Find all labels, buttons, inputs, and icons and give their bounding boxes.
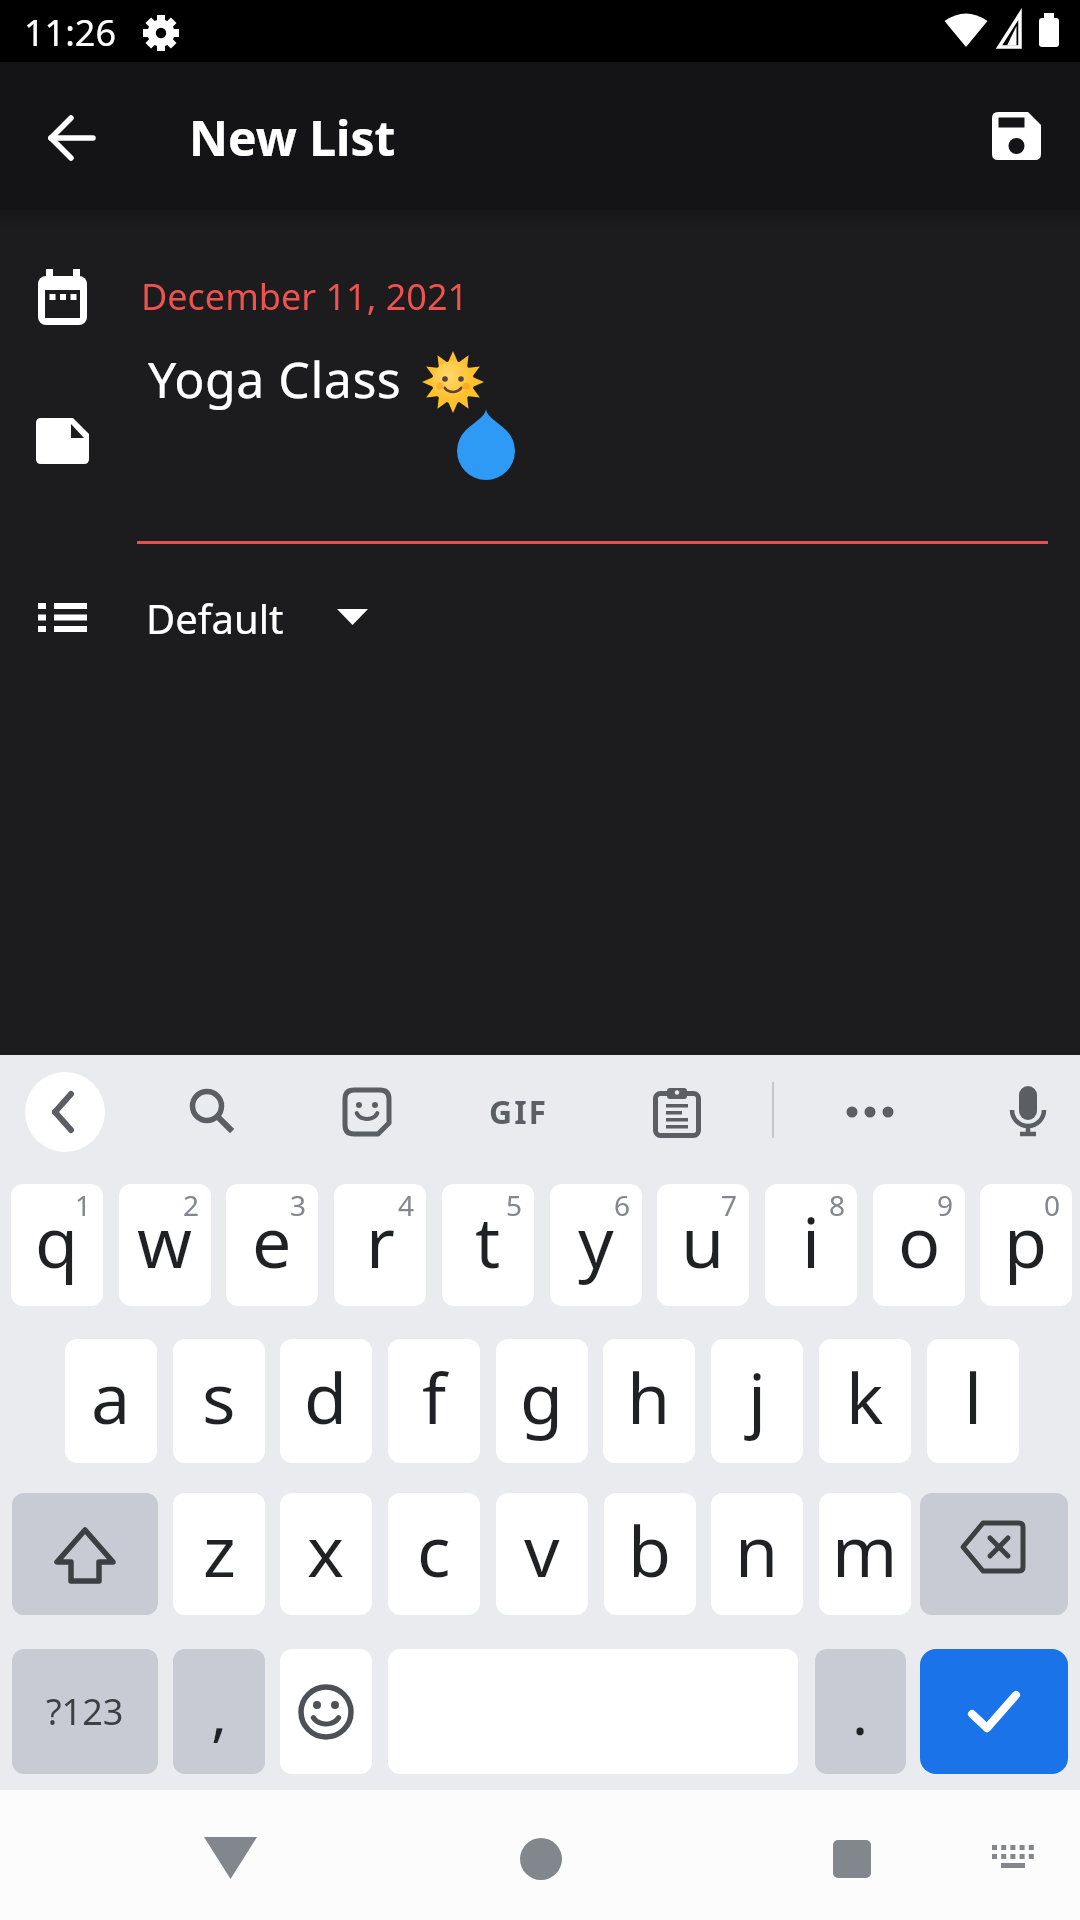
button[interactable]: r xyxy=(334,1184,426,1306)
staticText: n xyxy=(735,1502,779,1597)
button[interactable]: y xyxy=(550,1184,642,1306)
staticText: y xyxy=(578,1193,614,1288)
button[interactable]: k xyxy=(819,1339,911,1463)
button[interactable]: z xyxy=(173,1493,265,1615)
button[interactable]: u xyxy=(657,1184,749,1306)
button[interactable]: n xyxy=(711,1493,803,1615)
button[interactable]: s xyxy=(173,1339,265,1463)
button[interactable]: o xyxy=(873,1184,965,1306)
button[interactable]: Default xyxy=(20,580,420,652)
button[interactable] xyxy=(280,1649,372,1774)
button[interactable] xyxy=(981,100,1053,172)
button[interactable]: b xyxy=(604,1493,696,1615)
button[interactable]: c xyxy=(388,1493,480,1615)
staticText: z xyxy=(203,1502,236,1597)
staticText: k xyxy=(846,1349,884,1444)
button[interactable]: , xyxy=(173,1649,265,1774)
button[interactable] xyxy=(977,1822,1049,1894)
button[interactable]: h xyxy=(603,1339,695,1463)
staticText: h xyxy=(627,1349,671,1444)
staticText: o xyxy=(898,1193,941,1288)
button[interactable] xyxy=(830,1072,910,1152)
button[interactable]: a xyxy=(65,1339,157,1463)
button[interactable]: ?123 xyxy=(12,1649,158,1774)
button[interactable]: m xyxy=(819,1493,911,1615)
staticText: 0 xyxy=(1044,1186,1061,1224)
button[interactable] xyxy=(920,1649,1068,1774)
staticText: m xyxy=(832,1502,898,1597)
staticText: u xyxy=(681,1193,725,1288)
button[interactable] xyxy=(920,1493,1068,1615)
staticText: s xyxy=(202,1349,236,1444)
button[interactable]: j xyxy=(711,1339,803,1463)
button[interactable]: p xyxy=(980,1184,1072,1306)
button[interactable]: GIF xyxy=(474,1072,564,1152)
staticText: g xyxy=(520,1349,564,1444)
button[interactable]: g xyxy=(496,1339,588,1463)
button[interactable]: w xyxy=(119,1184,211,1306)
button[interactable]: v xyxy=(496,1493,588,1615)
button[interactable] xyxy=(172,1072,252,1152)
staticText: 9 xyxy=(937,1186,954,1224)
staticText: 8 xyxy=(829,1186,846,1224)
staticText: December 11, 2021 xyxy=(141,272,469,321)
staticText: d xyxy=(304,1349,348,1444)
button[interactable]: x xyxy=(280,1493,372,1615)
staticText: r xyxy=(366,1193,395,1288)
button[interactable]: e xyxy=(226,1184,318,1306)
button[interactable] xyxy=(25,1072,105,1152)
button[interactable] xyxy=(171,1799,291,1919)
staticText: 1 xyxy=(75,1186,92,1224)
button[interactable] xyxy=(637,1072,717,1152)
staticText: f xyxy=(422,1349,447,1444)
staticText: b xyxy=(628,1502,672,1597)
button[interactable] xyxy=(327,1072,407,1152)
button[interactable]: d xyxy=(280,1339,372,1463)
button[interactable] xyxy=(0,345,1080,545)
staticText: l xyxy=(964,1349,983,1444)
staticText: 5 xyxy=(506,1186,523,1224)
staticText: q xyxy=(35,1193,79,1288)
staticText: 7 xyxy=(721,1186,738,1224)
button[interactable] xyxy=(792,1799,912,1919)
staticText: 11:26 xyxy=(24,8,117,57)
staticText: i xyxy=(802,1193,821,1288)
staticText: c xyxy=(417,1502,451,1597)
staticText: Yoga Class xyxy=(148,345,402,413)
staticText: 4 xyxy=(398,1186,415,1224)
button[interactable]: l xyxy=(927,1339,1019,1463)
staticText: e xyxy=(252,1193,292,1288)
button[interactable]: t xyxy=(442,1184,534,1306)
staticText: x xyxy=(307,1502,345,1597)
button[interactable] xyxy=(36,102,108,174)
button[interactable] xyxy=(988,1072,1068,1152)
staticText: 2 xyxy=(183,1186,200,1224)
staticText: a xyxy=(91,1349,131,1444)
staticText: 3 xyxy=(290,1186,307,1224)
staticText: p xyxy=(1004,1193,1048,1288)
staticText: , xyxy=(211,1671,228,1753)
button[interactable]: f xyxy=(388,1339,480,1463)
staticText: t xyxy=(475,1193,501,1288)
staticText: w xyxy=(137,1193,193,1288)
staticText: New List xyxy=(189,105,396,170)
staticText: Default xyxy=(146,591,284,645)
staticText: GIF xyxy=(489,1090,549,1134)
button[interactable]: . xyxy=(815,1649,906,1774)
button[interactable] xyxy=(12,1493,158,1615)
staticText: v xyxy=(524,1502,560,1597)
staticText: . xyxy=(852,1671,869,1753)
button[interactable] xyxy=(481,1799,601,1919)
button[interactable]: i xyxy=(765,1184,857,1306)
button[interactable]: December 11, 2021 xyxy=(24,258,1064,342)
staticText: ?123 xyxy=(46,1687,124,1736)
staticText: 6 xyxy=(614,1186,631,1224)
staticText: j xyxy=(748,1349,767,1444)
button[interactable]: q xyxy=(11,1184,103,1306)
